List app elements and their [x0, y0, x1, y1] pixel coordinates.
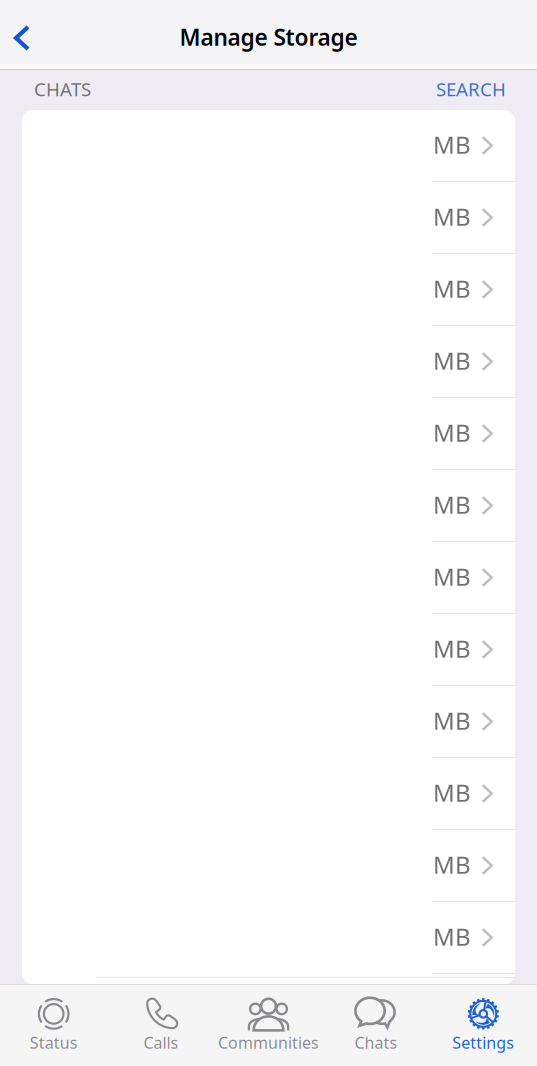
button[interactable]: Calls	[107, 989, 215, 1061]
button[interactable]: MB	[22, 758, 515, 829]
staticText: MB	[433, 201, 471, 232]
button[interactable]: MB	[22, 542, 515, 613]
button[interactable]: Communities	[215, 989, 322, 1061]
button[interactable]: MB	[22, 110, 515, 181]
staticText: MB	[433, 129, 471, 160]
button[interactable]: MB	[22, 182, 515, 253]
staticText: Status	[30, 1032, 78, 1053]
button[interactable]: MB	[22, 830, 515, 901]
staticText: CHATS	[34, 77, 91, 101]
staticText: Manage Storage	[179, 22, 357, 52]
button[interactable]: Status	[0, 989, 107, 1061]
staticText: MB	[433, 561, 471, 592]
staticText: MB	[433, 489, 471, 520]
button[interactable]: Back	[0, 0, 44, 70]
button[interactable]: SEARCH	[436, 77, 506, 101]
staticText: MB	[433, 849, 471, 880]
button[interactable]: MB	[22, 686, 515, 757]
staticText: MB	[433, 705, 471, 736]
staticText: MB	[433, 921, 471, 952]
staticText: MB	[433, 345, 471, 376]
button[interactable]: Settings	[430, 989, 537, 1061]
button[interactable]: MB	[22, 254, 515, 325]
staticText: Calls	[144, 1032, 179, 1053]
staticText: Communities	[218, 1032, 319, 1053]
button[interactable]: MB	[22, 470, 515, 541]
staticText: MB	[433, 417, 471, 448]
button[interactable]: Chats	[322, 989, 430, 1061]
staticText: Chats	[354, 1032, 397, 1053]
staticText: MB	[433, 633, 471, 664]
button[interactable]: MB	[22, 902, 515, 973]
button[interactable]: MB	[22, 614, 515, 685]
button[interactable]: MB	[22, 326, 515, 397]
staticText: Settings	[452, 1032, 514, 1053]
staticText: MB	[433, 777, 471, 808]
staticText: SEARCH	[436, 77, 506, 101]
button[interactable]: MB	[22, 398, 515, 469]
staticText: MB	[433, 273, 471, 304]
